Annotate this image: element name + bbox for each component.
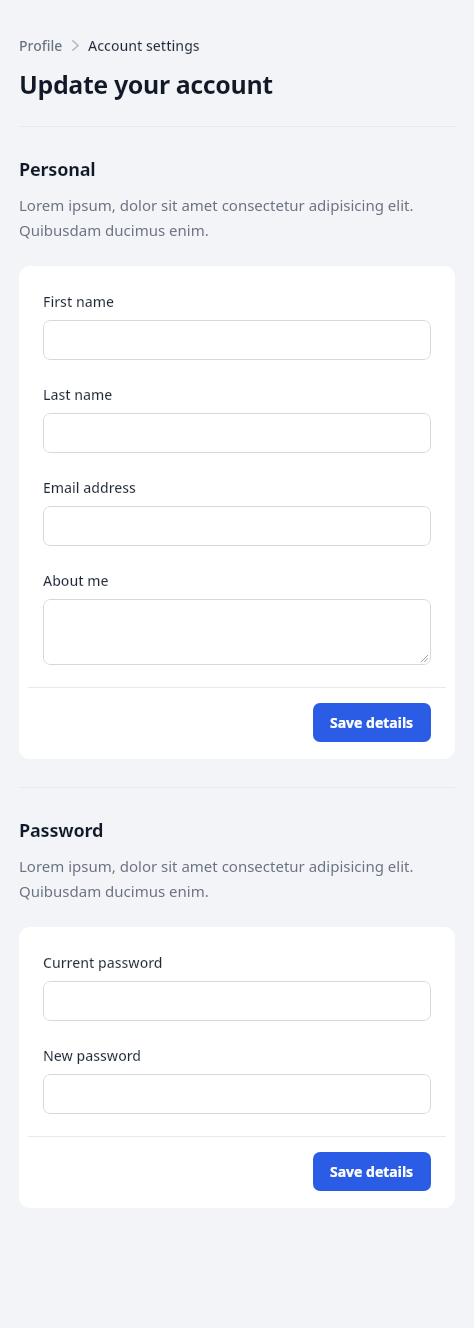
button[interactable]: Save details: [313, 703, 431, 742]
button[interactable]: [43, 320, 431, 360]
staticText: Current password: [43, 953, 163, 972]
staticText: First name: [43, 292, 114, 311]
staticText: Lorem ipsum, dolor sit amet consectetur …: [19, 856, 446, 901]
staticText: Update your account: [19, 67, 273, 101]
staticText: Save details: [330, 1162, 414, 1181]
staticText: Password: [19, 818, 104, 843]
button[interactable]: [43, 981, 431, 1021]
staticText: Personal: [19, 157, 96, 182]
staticText: About me: [43, 571, 109, 590]
staticText: Last name: [43, 385, 113, 404]
button[interactable]: [43, 1074, 431, 1114]
staticText: Email address: [43, 478, 136, 497]
button[interactable]: [43, 413, 431, 453]
button[interactable]: [43, 506, 431, 546]
button[interactable]: Save details: [313, 1152, 431, 1191]
button[interactable]: Account settings: [88, 36, 200, 55]
staticText: New password: [43, 1046, 142, 1065]
button[interactable]: [43, 599, 431, 665]
button[interactable]: Profile: [19, 36, 63, 55]
staticText: Lorem ipsum, dolor sit amet consectetur …: [19, 195, 446, 240]
staticText: Save details: [330, 713, 414, 732]
